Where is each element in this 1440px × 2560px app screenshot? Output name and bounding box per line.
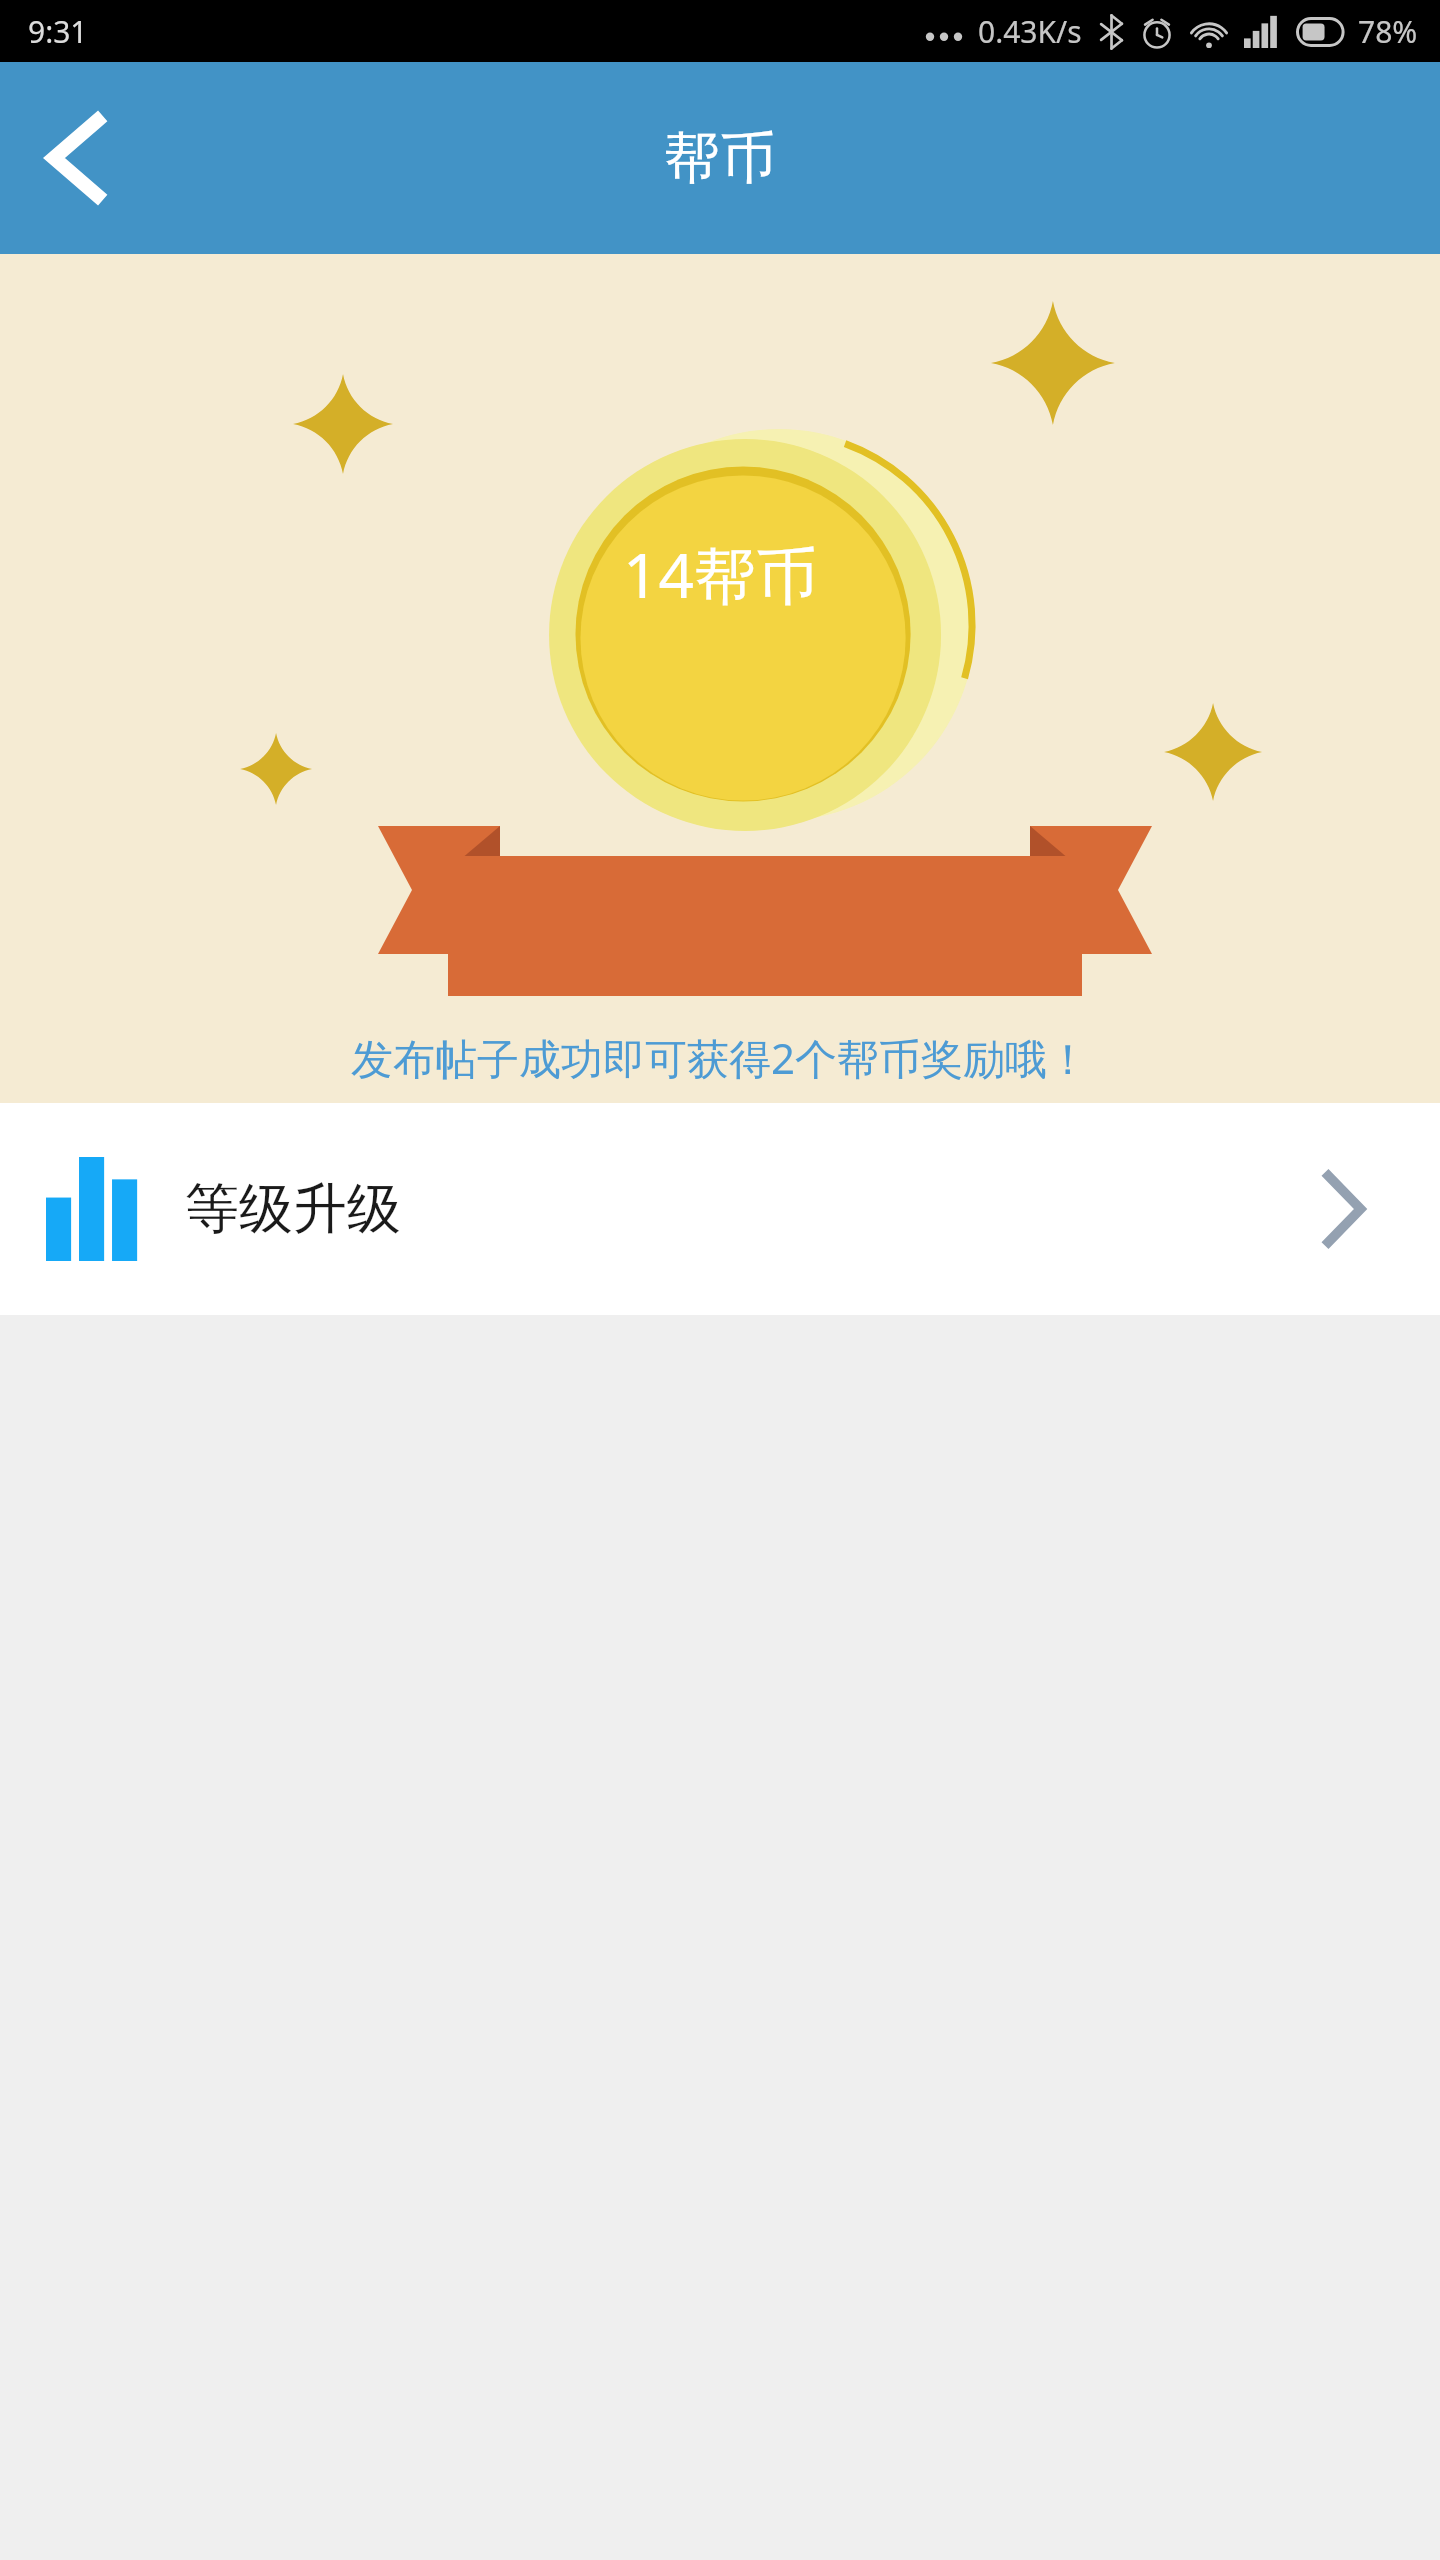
- staticText: 78%: [1358, 11, 1418, 52]
- button[interactable]: 返回: [0, 83, 150, 233]
- staticText: 等级升级: [185, 1175, 401, 1243]
- staticText: 9:31: [28, 11, 88, 52]
- staticText: 帮币: [664, 123, 776, 194]
- staticText: 0.43K/s: [978, 11, 1082, 52]
- other: 等级升级: [1274, 1103, 1414, 1315]
- staticText: 发布帖子成功即可获得2个帮币奖励哦！: [351, 1029, 1090, 1086]
- staticText: 14帮币: [623, 532, 818, 617]
- button[interactable]: 等级升级: [0, 1103, 1440, 1315]
